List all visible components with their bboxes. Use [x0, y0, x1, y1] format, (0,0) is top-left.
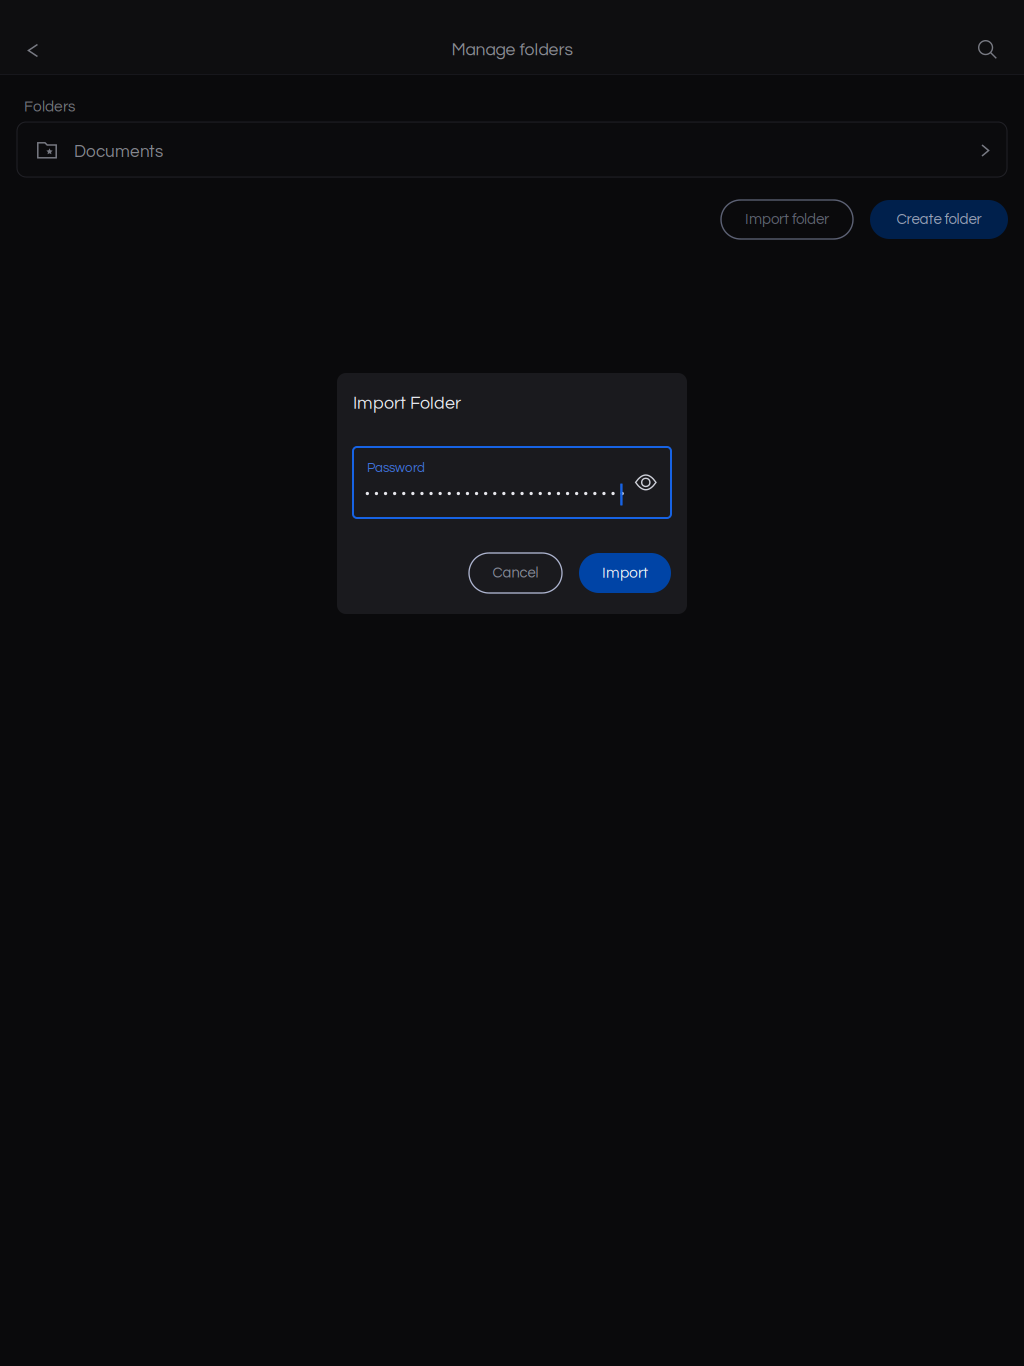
button[interactable]: Documents — [17, 122, 1007, 177]
staticText: Import — [602, 565, 648, 581]
staticText: Manage folders — [451, 41, 572, 59]
button[interactable]: Back — [11, 28, 55, 72]
staticText: Create folder — [896, 212, 981, 227]
button[interactable]: Cancel — [469, 553, 562, 593]
button[interactable]: Import — [579, 553, 671, 593]
staticText: Documents — [74, 143, 163, 161]
button[interactable]: Search — [965, 27, 1009, 71]
button[interactable]: Import folder — [721, 200, 853, 239]
button[interactable]: Create folder — [870, 200, 1008, 239]
button[interactable]: Show password — [629, 465, 663, 499]
staticText: Folders — [24, 99, 75, 115]
staticText: Import Folder — [353, 394, 461, 412]
staticText: Import folder — [745, 212, 829, 227]
staticText: Password — [367, 461, 425, 475]
button[interactable]: Password — [353, 447, 671, 518]
staticText: Cancel — [492, 565, 538, 580]
